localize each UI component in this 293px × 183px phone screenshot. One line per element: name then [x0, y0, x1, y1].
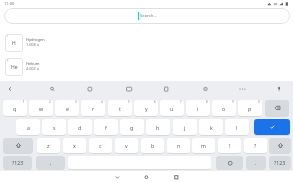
staticText: 2	[49, 100, 51, 104]
staticText: Hydrogen	[26, 37, 45, 42]
staticText: t	[119, 105, 121, 112]
staticText: 0	[258, 100, 260, 104]
staticText: q	[13, 105, 17, 112]
button[interactable]: r	[81, 100, 105, 116]
button[interactable]: ,	[36, 156, 65, 169]
button[interactable]: b	[141, 138, 164, 153]
button[interactable]: t	[108, 100, 132, 116]
staticText: o	[222, 105, 226, 112]
staticText: p	[248, 105, 252, 112]
staticText: m	[201, 142, 206, 149]
staticText: l	[236, 124, 238, 131]
staticText: c	[99, 142, 102, 149]
staticText: .	[255, 159, 257, 166]
staticText: d	[78, 124, 82, 131]
button[interactable]: Search...	[4, 8, 290, 24]
staticText: w	[39, 105, 44, 112]
button[interactable]: c	[89, 138, 112, 153]
button[interactable]: o	[212, 100, 236, 116]
button[interactable]: !	[218, 138, 241, 153]
staticText: y	[145, 105, 148, 112]
button[interactable]: s	[42, 119, 66, 135]
staticText: ,	[50, 159, 52, 166]
button[interactable]	[265, 100, 289, 116]
staticText: v	[125, 142, 128, 149]
staticText: ?	[254, 142, 257, 149]
staticText: 6	[154, 100, 156, 104]
button[interactable]: g	[120, 119, 144, 135]
staticText: ?123	[274, 159, 286, 166]
staticText: k	[210, 124, 213, 131]
staticText: 11:00	[4, 1, 15, 6]
button[interactable]: z	[37, 138, 60, 153]
staticText: He	[11, 64, 18, 71]
button[interactable]: He	[5, 58, 23, 76]
button[interactable]: v	[115, 138, 138, 153]
staticText: z	[47, 142, 50, 149]
button[interactable]: p	[238, 100, 262, 116]
staticText: r	[92, 105, 95, 112]
button[interactable]	[216, 156, 243, 169]
button[interactable]: x	[63, 138, 86, 153]
button[interactable]: ?	[244, 138, 267, 153]
staticText: 7	[180, 100, 182, 104]
staticText: 1	[7, 34, 9, 38]
staticText: i	[197, 105, 199, 112]
button[interactable]	[254, 119, 290, 135]
button[interactable]: i	[186, 100, 210, 116]
staticText: 3	[75, 100, 77, 104]
staticText: f	[105, 124, 107, 131]
staticText: ?123	[12, 159, 24, 166]
staticText: !	[229, 142, 231, 149]
staticText: 5	[128, 100, 130, 104]
button[interactable]: h	[146, 119, 170, 135]
button[interactable]: y	[134, 100, 158, 116]
staticText: g	[130, 124, 134, 131]
button[interactable]: k	[199, 119, 223, 135]
staticText: u	[170, 105, 174, 112]
staticText: Helium	[26, 61, 40, 66]
button[interactable]: m	[192, 138, 215, 153]
staticText: n	[177, 142, 181, 149]
staticText: h	[156, 124, 160, 131]
staticText: 8	[206, 100, 208, 104]
button[interactable]: f	[94, 119, 118, 135]
button[interactable]: l	[225, 119, 249, 135]
button[interactable]: e	[55, 100, 79, 116]
staticText: H	[12, 40, 16, 47]
button[interactable]: a	[16, 119, 40, 135]
staticText: 2	[7, 58, 9, 62]
staticText: a	[27, 124, 30, 131]
staticText: 9	[232, 100, 234, 104]
staticText: s	[53, 124, 56, 131]
button[interactable]: H	[5, 34, 23, 52]
button[interactable]: q	[3, 100, 27, 116]
button[interactable]: j	[173, 119, 197, 135]
button[interactable]: n	[167, 138, 190, 153]
button[interactable]: ?123	[3, 156, 32, 169]
staticText: 4.002 u	[26, 66, 40, 71]
button[interactable]: u	[160, 100, 184, 116]
staticText: 1.008 u	[26, 42, 40, 47]
staticText: j	[184, 124, 186, 131]
button[interactable]: w	[29, 100, 53, 116]
staticText: b	[151, 142, 155, 149]
button[interactable]: ?123	[269, 156, 291, 169]
staticText: 4	[101, 100, 103, 104]
staticText: 1	[23, 100, 25, 104]
button[interactable]	[269, 138, 291, 153]
button[interactable]: .	[246, 156, 266, 169]
staticText: e	[66, 105, 69, 112]
button[interactable]: d	[68, 119, 92, 135]
staticText: x	[73, 142, 76, 149]
button[interactable]	[3, 138, 33, 153]
staticText: Search...	[140, 13, 157, 19]
